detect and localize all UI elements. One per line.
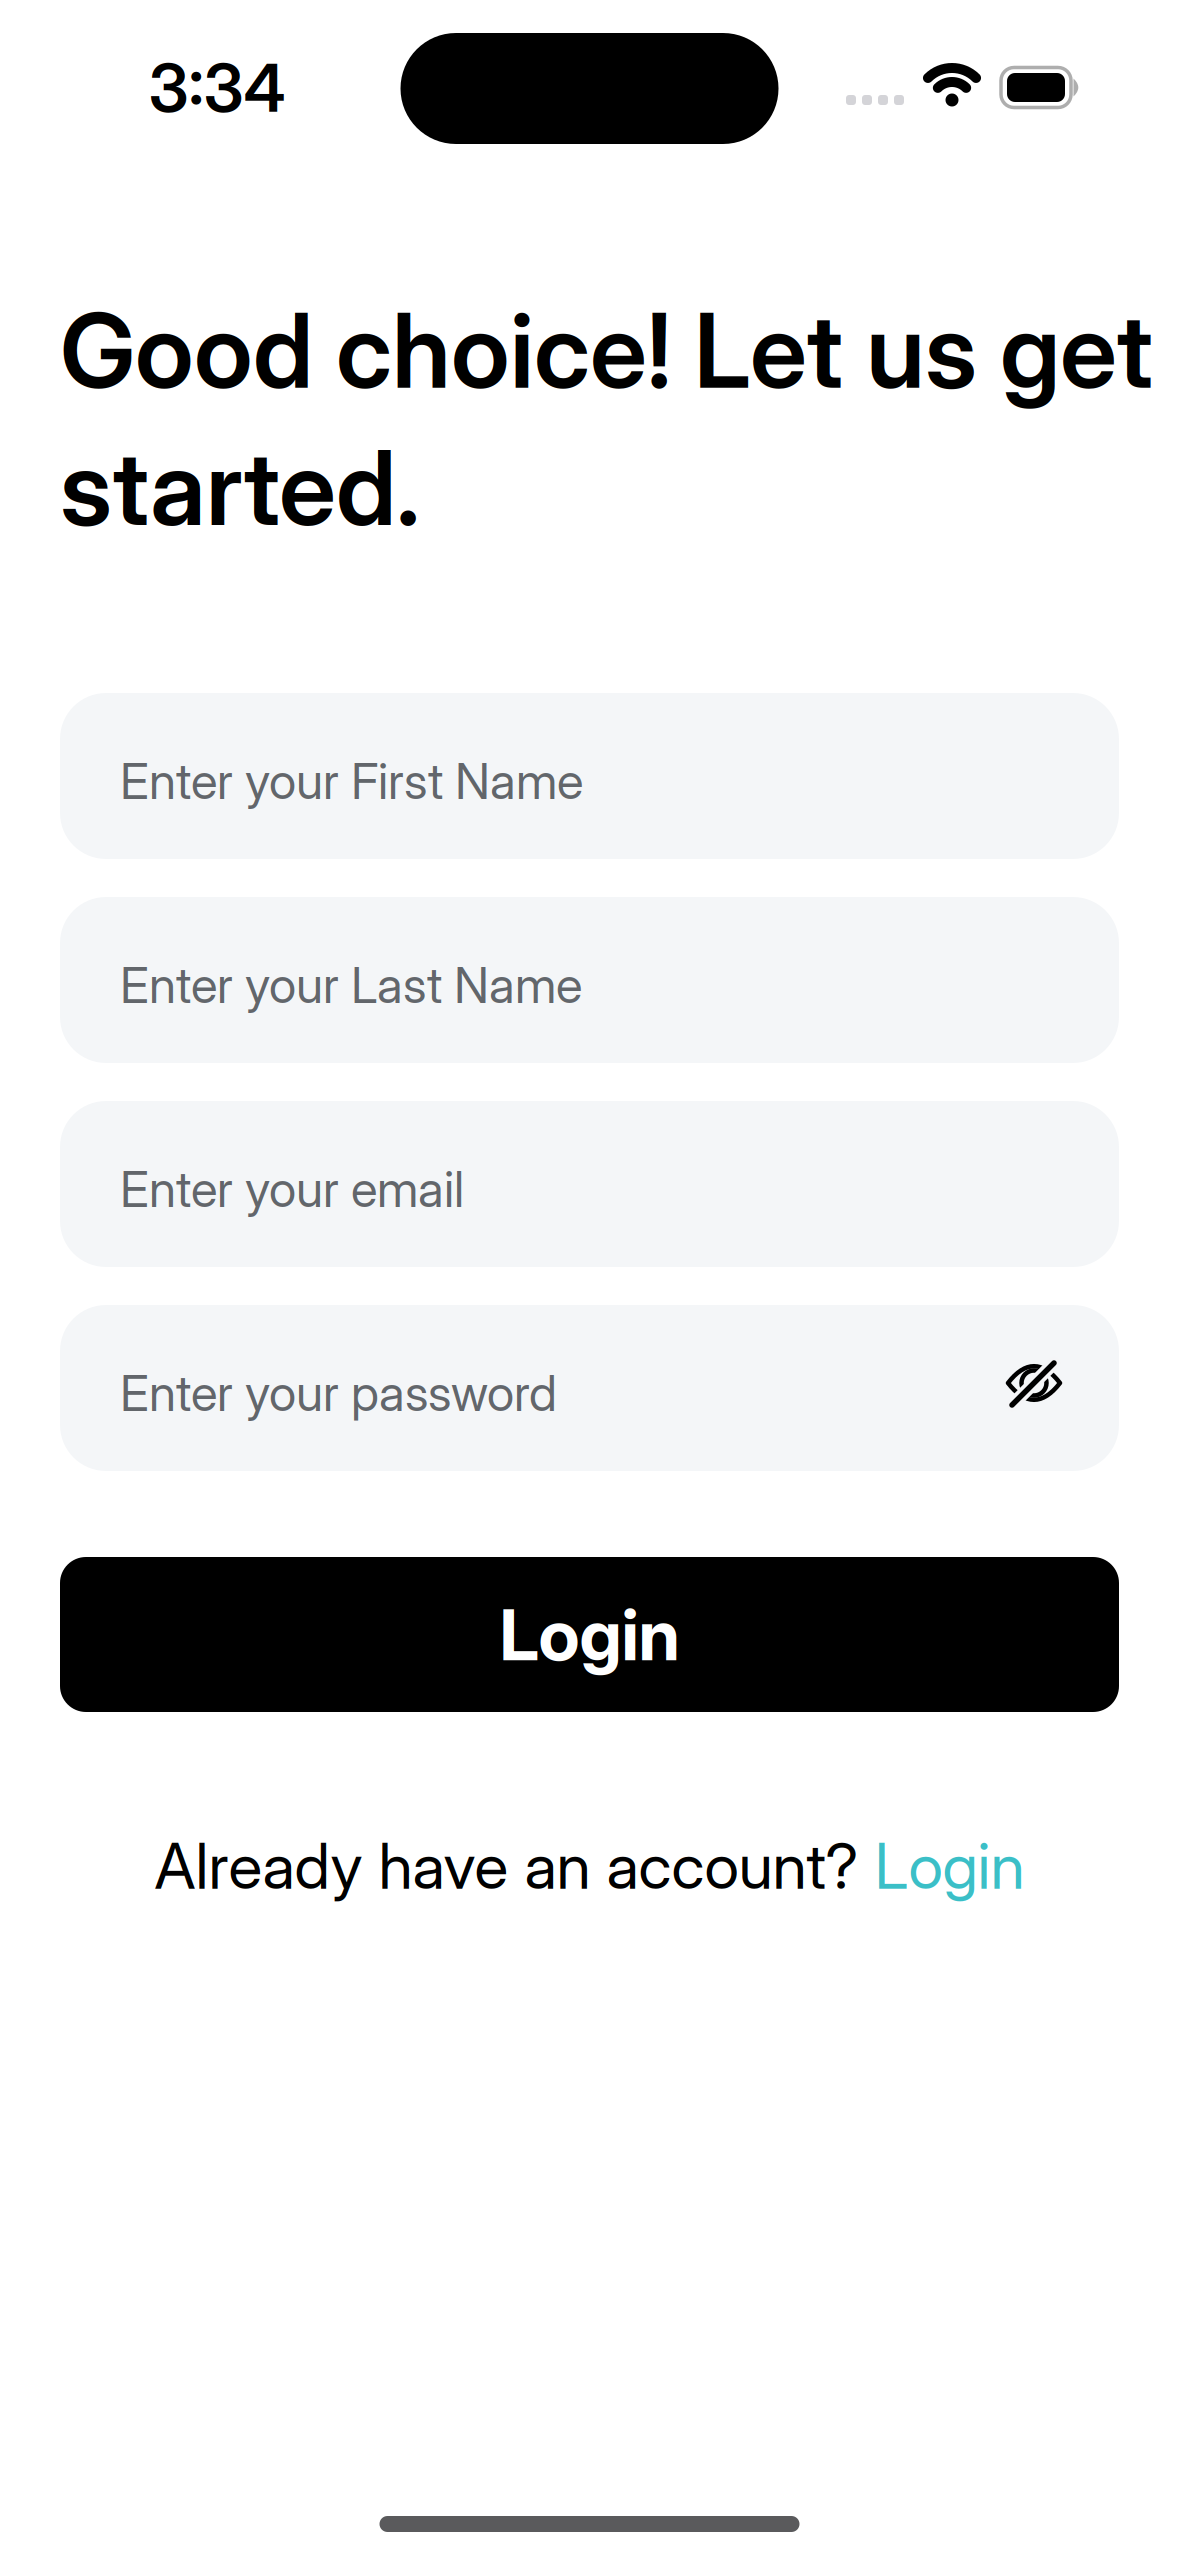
button[interactable]: Login bbox=[874, 1829, 1024, 1903]
staticText: Enter your email bbox=[120, 1160, 464, 1218]
staticText: Login bbox=[499, 1593, 679, 1676]
button[interactable]: Enter your password bbox=[60, 1305, 1119, 1471]
button[interactable]: Enter your Last Name bbox=[60, 897, 1119, 1063]
button[interactable]: Enter your First Name bbox=[60, 693, 1119, 859]
button[interactable]: Login bbox=[60, 1557, 1119, 1712]
staticText: Login bbox=[874, 1829, 1024, 1903]
button[interactable]: Show password bbox=[1006, 1358, 1062, 1408]
button[interactable]: Enter your email bbox=[60, 1101, 1119, 1267]
staticText: Good choice! Let us get started. bbox=[60, 290, 1153, 548]
staticText: 3:34 bbox=[148, 49, 285, 127]
staticText: Enter your Last Name bbox=[120, 956, 582, 1014]
staticText: Already have an account? bbox=[154, 1829, 858, 1903]
staticText: Enter your password bbox=[120, 1364, 557, 1422]
staticText: Enter your First Name bbox=[120, 752, 583, 810]
